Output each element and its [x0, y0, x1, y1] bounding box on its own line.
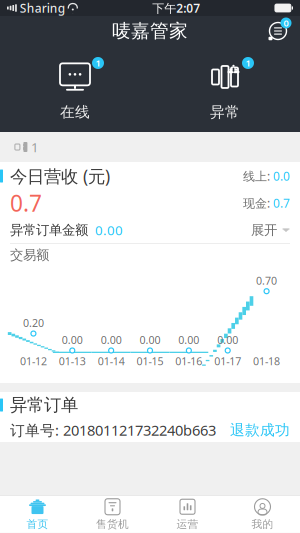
- staticText: 0.7: [10, 188, 42, 218]
- staticText: 0: [283, 17, 288, 29]
- staticText: 现金:: [243, 195, 270, 211]
- staticText: 0.00: [178, 333, 199, 347]
- staticText: 01-14: [98, 354, 125, 368]
- staticText: 0.00: [101, 333, 122, 347]
- staticText: 线上:: [243, 168, 270, 184]
- staticText: 异常: [210, 103, 240, 121]
- button[interactable]: 售货机: [75, 496, 150, 533]
- staticText: 展开: [251, 222, 277, 238]
- staticText: 运营: [176, 518, 198, 531]
- staticText: 0.70: [256, 273, 277, 288]
- staticText: 01-13: [59, 354, 86, 368]
- staticText: 1: [245, 57, 250, 69]
- staticText: 在线: [60, 103, 90, 121]
- staticText: 今日营收 (元): [10, 164, 110, 187]
- staticText: 唛嘉管家: [112, 19, 188, 42]
- staticText: 0.00: [62, 333, 83, 347]
- button[interactable]: 1: [150, 46, 300, 132]
- staticText: 01-16: [175, 354, 202, 368]
- staticText: 异常订单金额: [10, 222, 88, 238]
- staticText: 售货机: [96, 518, 129, 531]
- staticText: 退款成功: [230, 421, 290, 439]
- staticText: 下午2:07: [152, 0, 200, 16]
- staticText: 01-15: [136, 354, 163, 368]
- staticText: Sharing: [20, 0, 65, 16]
- staticText: 0.20: [23, 316, 44, 330]
- staticText: 01-18: [253, 354, 280, 368]
- staticText: 01-17: [214, 354, 241, 368]
- staticText: 首页: [26, 518, 48, 531]
- staticText: 0.00: [95, 221, 123, 239]
- staticText: 0.00: [139, 333, 160, 347]
- button[interactable]: 首页: [0, 496, 75, 533]
- staticText: 订单号: 201801121732240b663: [10, 420, 216, 440]
- staticText: 异常订单: [10, 394, 78, 416]
- button[interactable]: 异常订单金额: [0, 217, 300, 243]
- button[interactable]: 订单号: 201801121732240b663: [0, 418, 300, 442]
- staticText: 1: [95, 57, 100, 69]
- staticText: 0.7: [273, 195, 290, 211]
- button[interactable]: 1: [0, 46, 150, 132]
- staticText: 01-12: [20, 354, 47, 368]
- staticText: 我的: [251, 518, 273, 531]
- staticText: 0.00: [217, 333, 238, 347]
- button[interactable]: 消息: [265, 19, 300, 43]
- staticText: 交易额: [10, 247, 49, 263]
- staticText: 0.0: [273, 168, 290, 184]
- staticText: 1: [31, 138, 39, 156]
- button[interactable]: 我的: [225, 496, 300, 533]
- button[interactable]: 运营: [150, 496, 225, 533]
